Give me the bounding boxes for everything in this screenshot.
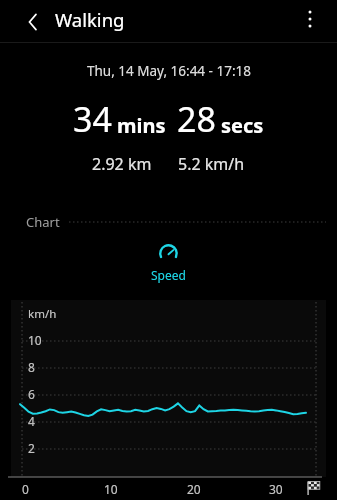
button[interactable]: Speed — [141, 241, 196, 285]
staticText: 30 — [269, 481, 283, 497]
button[interactable]: More options — [292, 1, 328, 37]
staticText: 34 — [73, 96, 112, 142]
staticText: 4 — [28, 413, 35, 429]
staticText: Thu, 14 May, 16:44 - 17:18 — [87, 62, 251, 80]
staticText: 8 — [28, 359, 35, 375]
other: Speed — [158, 243, 179, 264]
staticText: 6 — [28, 386, 35, 402]
other: Finish — [306, 480, 321, 495]
staticText: 0 — [22, 481, 29, 497]
staticText: secs — [221, 112, 264, 139]
staticText: 28 — [177, 96, 216, 142]
staticText: 10 — [104, 481, 118, 497]
staticText: 2 — [28, 440, 35, 456]
staticText: Chart — [26, 213, 60, 231]
staticText: 2.92 km — [92, 153, 152, 175]
staticText: km/h — [28, 306, 57, 322]
button[interactable]: Back — [16, 5, 50, 39]
staticText: 5.2 km/h — [178, 153, 245, 175]
staticText: Walking — [55, 7, 125, 32]
staticText: 10 — [28, 332, 42, 348]
staticText: 20 — [187, 481, 201, 497]
staticText: Speed — [151, 267, 186, 283]
staticText: mins — [117, 112, 166, 139]
